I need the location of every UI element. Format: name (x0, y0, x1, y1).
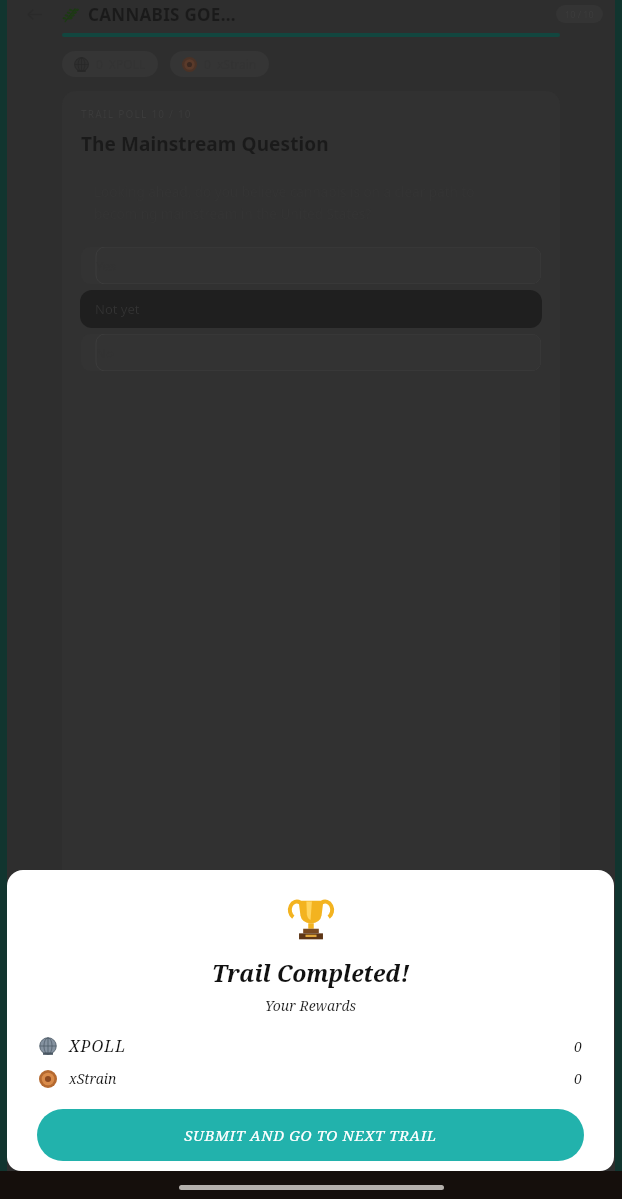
staticText: SUBMIT AND GO TO NEXT TRAIL (184, 1125, 437, 1145)
staticText: Not yet (95, 300, 140, 318)
button[interactable]: 0 (170, 51, 269, 77)
button[interactable]: SUBMIT AND GO TO NEXT TRAIL (37, 1109, 584, 1161)
staticText: CANNABIS GOE... (88, 3, 236, 26)
staticText: Your Rewards (265, 996, 357, 1015)
staticText: The Mainstream Question (81, 131, 329, 157)
staticText: Trail Completed! (212, 957, 410, 988)
staticText: xStrain (69, 1069, 117, 1088)
staticText: 0 (574, 1037, 582, 1056)
staticText: 0 (574, 1069, 582, 1088)
staticText: XPOLL (69, 1035, 127, 1057)
